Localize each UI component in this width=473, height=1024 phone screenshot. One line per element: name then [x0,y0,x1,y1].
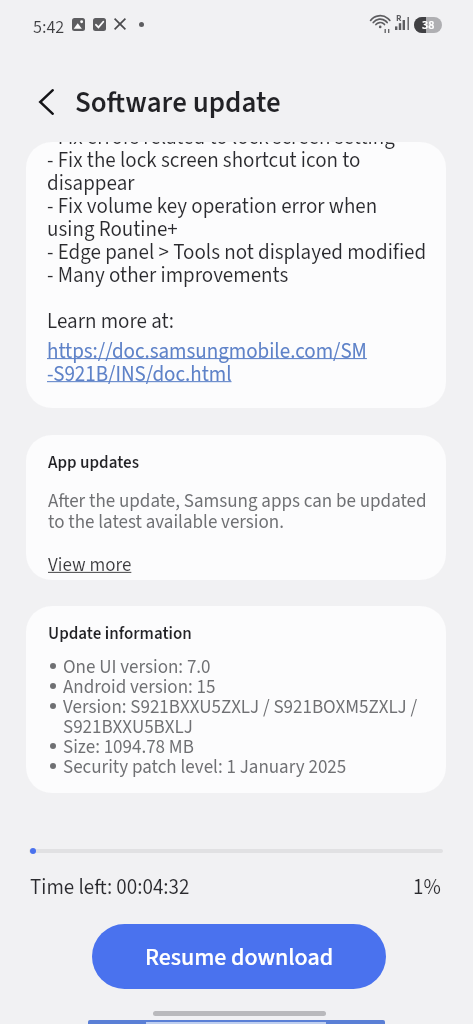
button[interactable]: View more [48,552,132,579]
button[interactable]: https://doc.samsungmobile.com/SM -S921B/… [47,336,367,388]
staticText: 5:42 [33,15,65,41]
staticText: R [396,12,402,25]
staticText: One UI version: 7.0 [63,654,211,681]
staticText: Software update [75,82,281,123]
staticText: 1% [413,872,441,902]
button[interactable]: Back [24,80,68,124]
staticText: Android version: 15 [63,674,216,701]
staticText: - Fix errors related to lock screen sett… [47,142,427,336]
staticText: S921BXXU5BXLJ [63,714,193,741]
staticText: Time left: 00:04:32 [30,872,190,902]
staticText: Security patch level: 1 January 2025 [63,754,347,781]
staticText: Update information [48,622,192,646]
staticText: App updates [48,451,140,475]
staticText: Version: S921BXXU5ZXLJ / S921BOXM5ZXLJ / [63,694,418,721]
staticText: After the update, Samsung apps can be up… [48,488,427,536]
staticText: Resume download [145,940,334,974]
staticText: 38 [422,17,435,33]
button[interactable]: Resume download [92,924,386,989]
staticText: Size: 1094.78 MB [63,734,194,761]
